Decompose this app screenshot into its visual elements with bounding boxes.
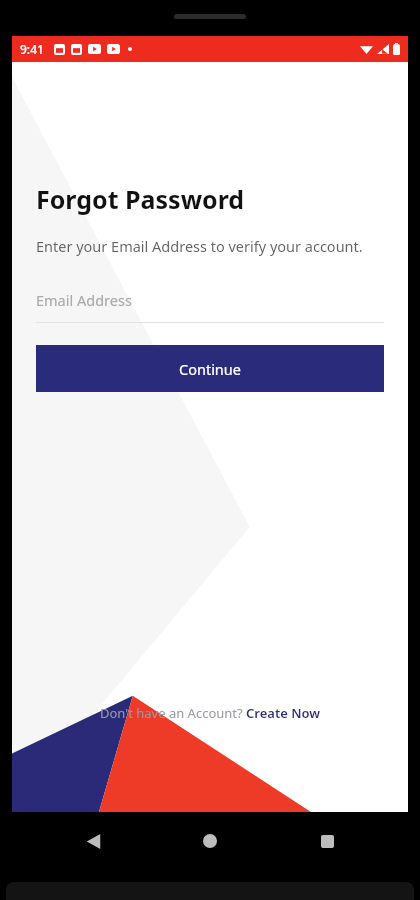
button[interactable]: Back (69, 817, 117, 865)
staticText: Email Address (36, 290, 132, 310)
button[interactable]: Continue (36, 345, 384, 392)
button[interactable]: Home (186, 817, 234, 865)
staticText: Forgot Password (36, 182, 245, 216)
button[interactable]: Recent apps (303, 817, 351, 865)
button[interactable]: Email Address (36, 290, 384, 323)
staticText: Continue (179, 359, 241, 379)
button[interactable]: Don't have an Account? Create Now (36, 704, 384, 722)
staticText: 9:41 (20, 41, 44, 57)
staticText: Enter your Email Address to verify your … (36, 236, 363, 256)
staticText: Don't have an Account? Create Now (100, 704, 321, 722)
